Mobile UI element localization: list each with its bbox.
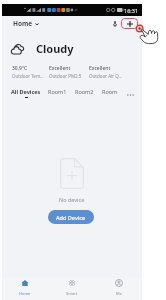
button[interactable]: Room1 bbox=[48, 88, 67, 97]
staticText: Outdoor Tem… bbox=[12, 73, 44, 79]
button[interactable]: Smart bbox=[48, 278, 95, 296]
button[interactable]: Voice assistant bbox=[110, 19, 119, 28]
button[interactable]: Room2 bbox=[75, 88, 94, 97]
button[interactable]: Add Device bbox=[48, 210, 94, 224]
staticText: Add Device bbox=[56, 214, 86, 221]
staticText: Room1 bbox=[48, 88, 67, 95]
staticText: Home bbox=[19, 291, 31, 296]
staticText: No device bbox=[59, 196, 85, 203]
button[interactable]: Add device bbox=[121, 18, 138, 29]
staticText: Cloudy bbox=[36, 41, 74, 56]
staticText: All Devices bbox=[11, 88, 41, 95]
staticText: 16:31 bbox=[124, 7, 139, 14]
button[interactable]: All Devices bbox=[11, 88, 41, 98]
button[interactable]: Room bbox=[102, 88, 118, 97]
staticText: Me bbox=[116, 291, 122, 296]
button[interactable]: Me bbox=[95, 278, 142, 296]
button[interactable]: More bbox=[125, 88, 135, 98]
staticText: Room bbox=[102, 88, 118, 95]
staticText: Excellent bbox=[49, 65, 71, 72]
staticText: Home bbox=[13, 19, 33, 28]
staticText: Room2 bbox=[75, 88, 94, 95]
staticText: Outdoor Air Q… bbox=[89, 73, 123, 79]
button[interactable]: Home bbox=[2, 278, 48, 296]
button[interactable]: Home bbox=[12, 17, 40, 30]
staticText: Excellent bbox=[89, 65, 111, 72]
staticText: Outdoor PM2.5 bbox=[49, 73, 82, 79]
button[interactable]: Excellent bbox=[89, 65, 128, 79]
button[interactable]: Excellent bbox=[49, 65, 89, 79]
staticText: 30.9°C bbox=[12, 65, 28, 72]
button[interactable]: 30.9°C bbox=[12, 65, 49, 79]
staticText: Smart bbox=[66, 291, 78, 296]
